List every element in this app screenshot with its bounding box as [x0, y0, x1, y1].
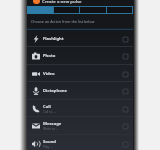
staticText: Write to ...	[43, 127, 59, 131]
button[interactable]: Select Sound	[121, 140, 130, 149]
button[interactable]: Step 3	[79, 6, 106, 14]
button[interactable]: Flashlight	[27, 30, 133, 48]
staticText: Message	[43, 121, 62, 127]
button[interactable]: Video	[27, 65, 133, 83]
staticText: Photo	[43, 53, 56, 59]
staticText: Dictaphone	[43, 88, 68, 94]
button[interactable]: Create a new pulse	[27, 0, 133, 6]
button[interactable]: Select Photo	[121, 52, 130, 61]
staticText: Call to ...	[43, 110, 56, 114]
staticText: Create a new pulse	[42, 0, 82, 5]
button[interactable]: Step 4	[106, 6, 133, 14]
button[interactable]: Sound	[27, 135, 133, 150]
button[interactable]: Message	[27, 117, 133, 135]
button[interactable]: Photo	[27, 47, 133, 65]
button[interactable]: Select Call	[121, 105, 130, 114]
button[interactable]: Call	[27, 100, 133, 118]
staticText: Play ...	[43, 145, 53, 149]
button[interactable]: Dictaphone	[27, 82, 133, 100]
button[interactable]: Select Flashlight	[121, 35, 130, 44]
other: Video	[32, 70, 40, 78]
button[interactable]: Select Message	[121, 122, 130, 131]
staticText: Call	[43, 104, 51, 110]
other: Photo	[32, 52, 40, 60]
staticText: Sound	[43, 139, 57, 145]
staticText: Choose an Action from the list below	[31, 19, 95, 24]
other: Dictaphone	[32, 87, 40, 95]
other: Message	[32, 122, 40, 130]
other: Flashlight	[32, 35, 40, 43]
other: Sound	[32, 140, 40, 148]
button[interactable]: Select Video	[121, 70, 130, 79]
button[interactable]: Select Dictaphone	[121, 87, 130, 96]
other: Call	[32, 105, 40, 113]
staticText: Video	[43, 71, 55, 77]
button[interactable]: Step 2	[53, 6, 79, 14]
staticText: Flashlight	[43, 36, 64, 42]
